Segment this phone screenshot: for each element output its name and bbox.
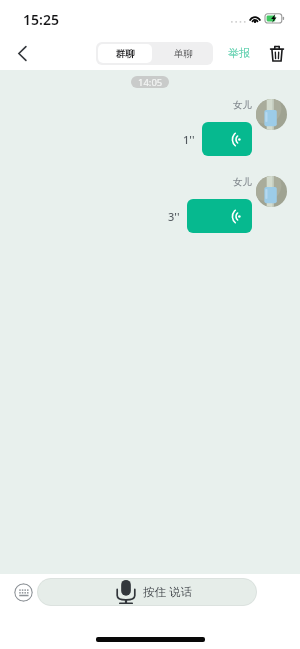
staticText: 单聊 <box>174 48 193 60</box>
staticText: 女儿 <box>233 99 252 111</box>
button[interactable]: Back <box>8 39 36 67</box>
button[interactable]: Play voice message <box>202 122 252 156</box>
staticText: 1'' <box>183 132 195 147</box>
staticText: 按住 说话 <box>143 584 192 600</box>
button[interactable]: 单聊 <box>154 42 213 65</box>
button[interactable]: Delete <box>266 42 288 64</box>
staticText: 3'' <box>168 209 180 224</box>
staticText: 群聊 <box>116 48 135 60</box>
button[interactable]: 举报 <box>226 42 252 64</box>
button[interactable]: Keyboard <box>14 583 33 602</box>
staticText: 14:05 <box>138 76 163 88</box>
staticText: 女儿 <box>233 176 252 188</box>
staticText: 15:25 <box>23 10 59 29</box>
button[interactable]: 按住 说话 <box>37 578 257 606</box>
button[interactable]: 群聊 <box>98 44 152 63</box>
staticText: 举报 <box>228 46 250 60</box>
button[interactable]: Play voice message <box>187 199 252 233</box>
